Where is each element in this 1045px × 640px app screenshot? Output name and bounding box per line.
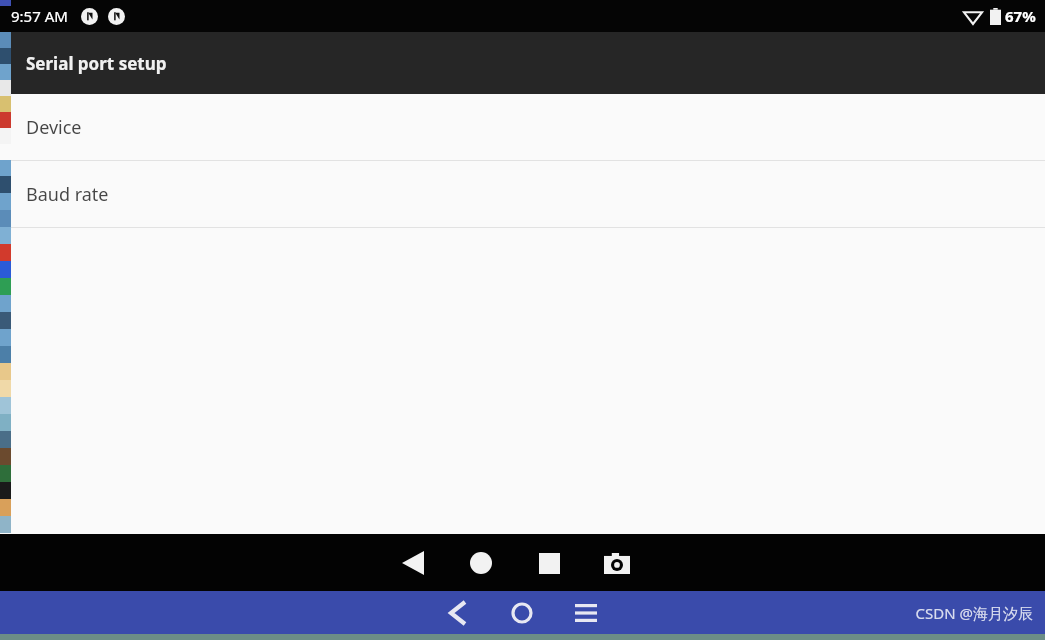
button[interactable]: Baud rate bbox=[0, 161, 1045, 227]
staticText: Baud rate bbox=[26, 182, 109, 207]
button[interactable]: Recent apps bbox=[526, 540, 572, 586]
button[interactable]: Screenshot bbox=[594, 540, 640, 586]
staticText: Serial port setup bbox=[26, 52, 167, 75]
staticText: 9:57 AM bbox=[11, 6, 68, 26]
button[interactable]: Menu bbox=[564, 591, 608, 634]
button[interactable]: Back bbox=[390, 540, 436, 586]
staticText: CSDN @海月汐辰 bbox=[915, 603, 1033, 623]
staticText: 67% bbox=[1005, 6, 1036, 26]
staticText: Device bbox=[26, 115, 82, 140]
button[interactable]: Home bbox=[500, 591, 544, 634]
button[interactable]: Home bbox=[458, 540, 504, 586]
button[interactable]: Device bbox=[0, 94, 1045, 160]
button[interactable]: Back bbox=[436, 591, 480, 634]
